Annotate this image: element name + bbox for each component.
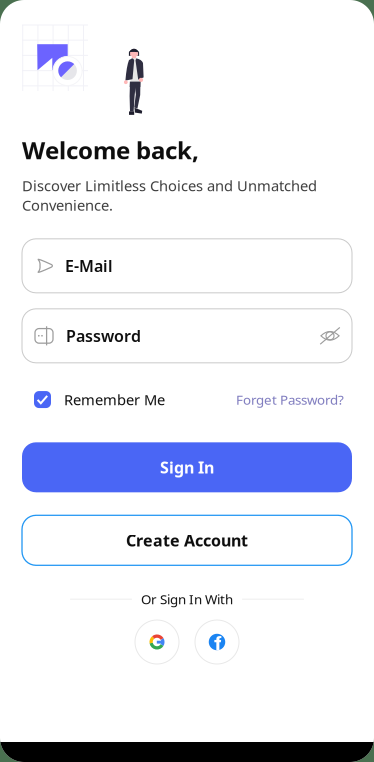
button[interactable]: Sign in with Facebook xyxy=(195,620,239,664)
button[interactable]: Sign In xyxy=(22,442,352,492)
staticText: Sign In xyxy=(160,457,214,478)
staticText: Discover Limitless Choices and Unmatched… xyxy=(22,176,317,215)
button[interactable]: Password xyxy=(22,309,352,363)
staticText: Remember Me xyxy=(64,390,165,409)
button[interactable]: Create Account xyxy=(22,515,352,565)
button[interactable]: Forget Password? xyxy=(236,391,344,408)
staticText: Welcome back, xyxy=(22,134,199,166)
staticText: E-Mail xyxy=(65,255,113,276)
staticText: Or Sign In With xyxy=(141,590,233,608)
staticText: Forget Password? xyxy=(236,391,344,408)
button[interactable]: Remember Me xyxy=(34,390,165,409)
button[interactable]: Sign in with Google xyxy=(135,620,179,664)
staticText: Password xyxy=(66,325,141,346)
button[interactable]: E-Mail xyxy=(22,239,352,293)
staticText: Create Account xyxy=(126,530,248,551)
